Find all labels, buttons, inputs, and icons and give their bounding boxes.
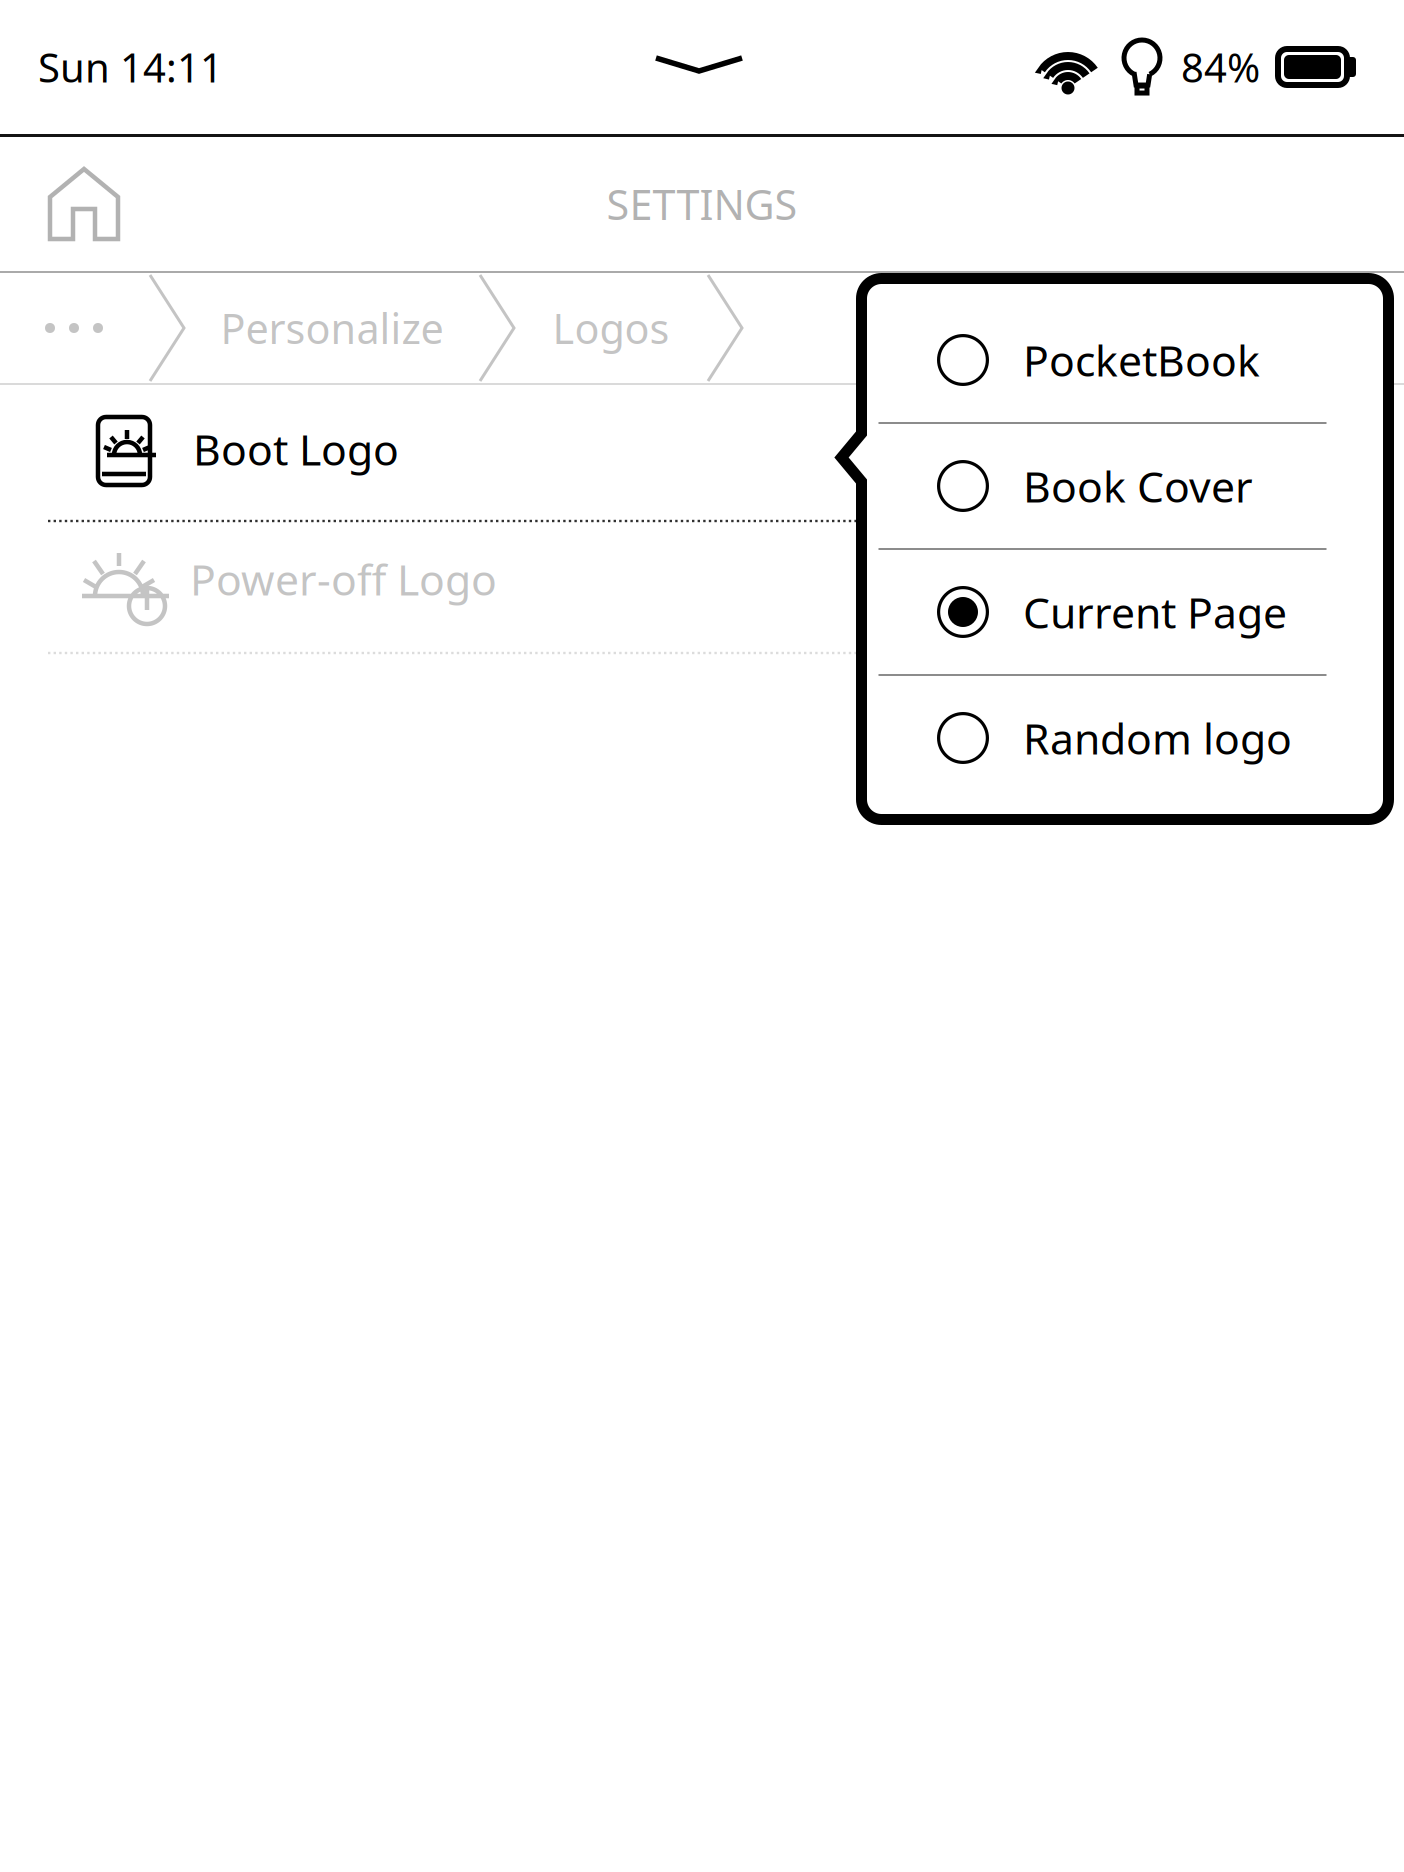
staticText: Power-off Logo (190, 551, 497, 607)
staticText: Random logo (1023, 710, 1292, 766)
button[interactable]: Current Page (856, 550, 1394, 674)
button[interactable]: Logos (516, 273, 706, 383)
staticText: Current Page (1023, 584, 1287, 640)
button[interactable]: Personalize (186, 273, 478, 383)
button[interactable]: PocketBook (856, 298, 1394, 422)
button[interactable]: Book Cover (856, 424, 1394, 548)
staticText: Personalize (220, 301, 443, 355)
button[interactable]: Boot Logo (0, 385, 1404, 519)
staticText: Book Cover (1023, 458, 1253, 514)
staticText: Boot Logo (193, 421, 399, 477)
staticText: SETTINGS (606, 177, 797, 231)
staticText: 84% (1181, 40, 1260, 93)
staticText: Sun 14:11 (38, 40, 223, 93)
button[interactable]: Random logo (856, 676, 1394, 800)
button[interactable]: More (0, 273, 148, 383)
button[interactable]: Power-off Logo (0, 523, 1404, 651)
button[interactable]: Home (0, 137, 146, 271)
staticText: Logos (552, 301, 669, 355)
staticText: PocketBook (1023, 332, 1260, 388)
